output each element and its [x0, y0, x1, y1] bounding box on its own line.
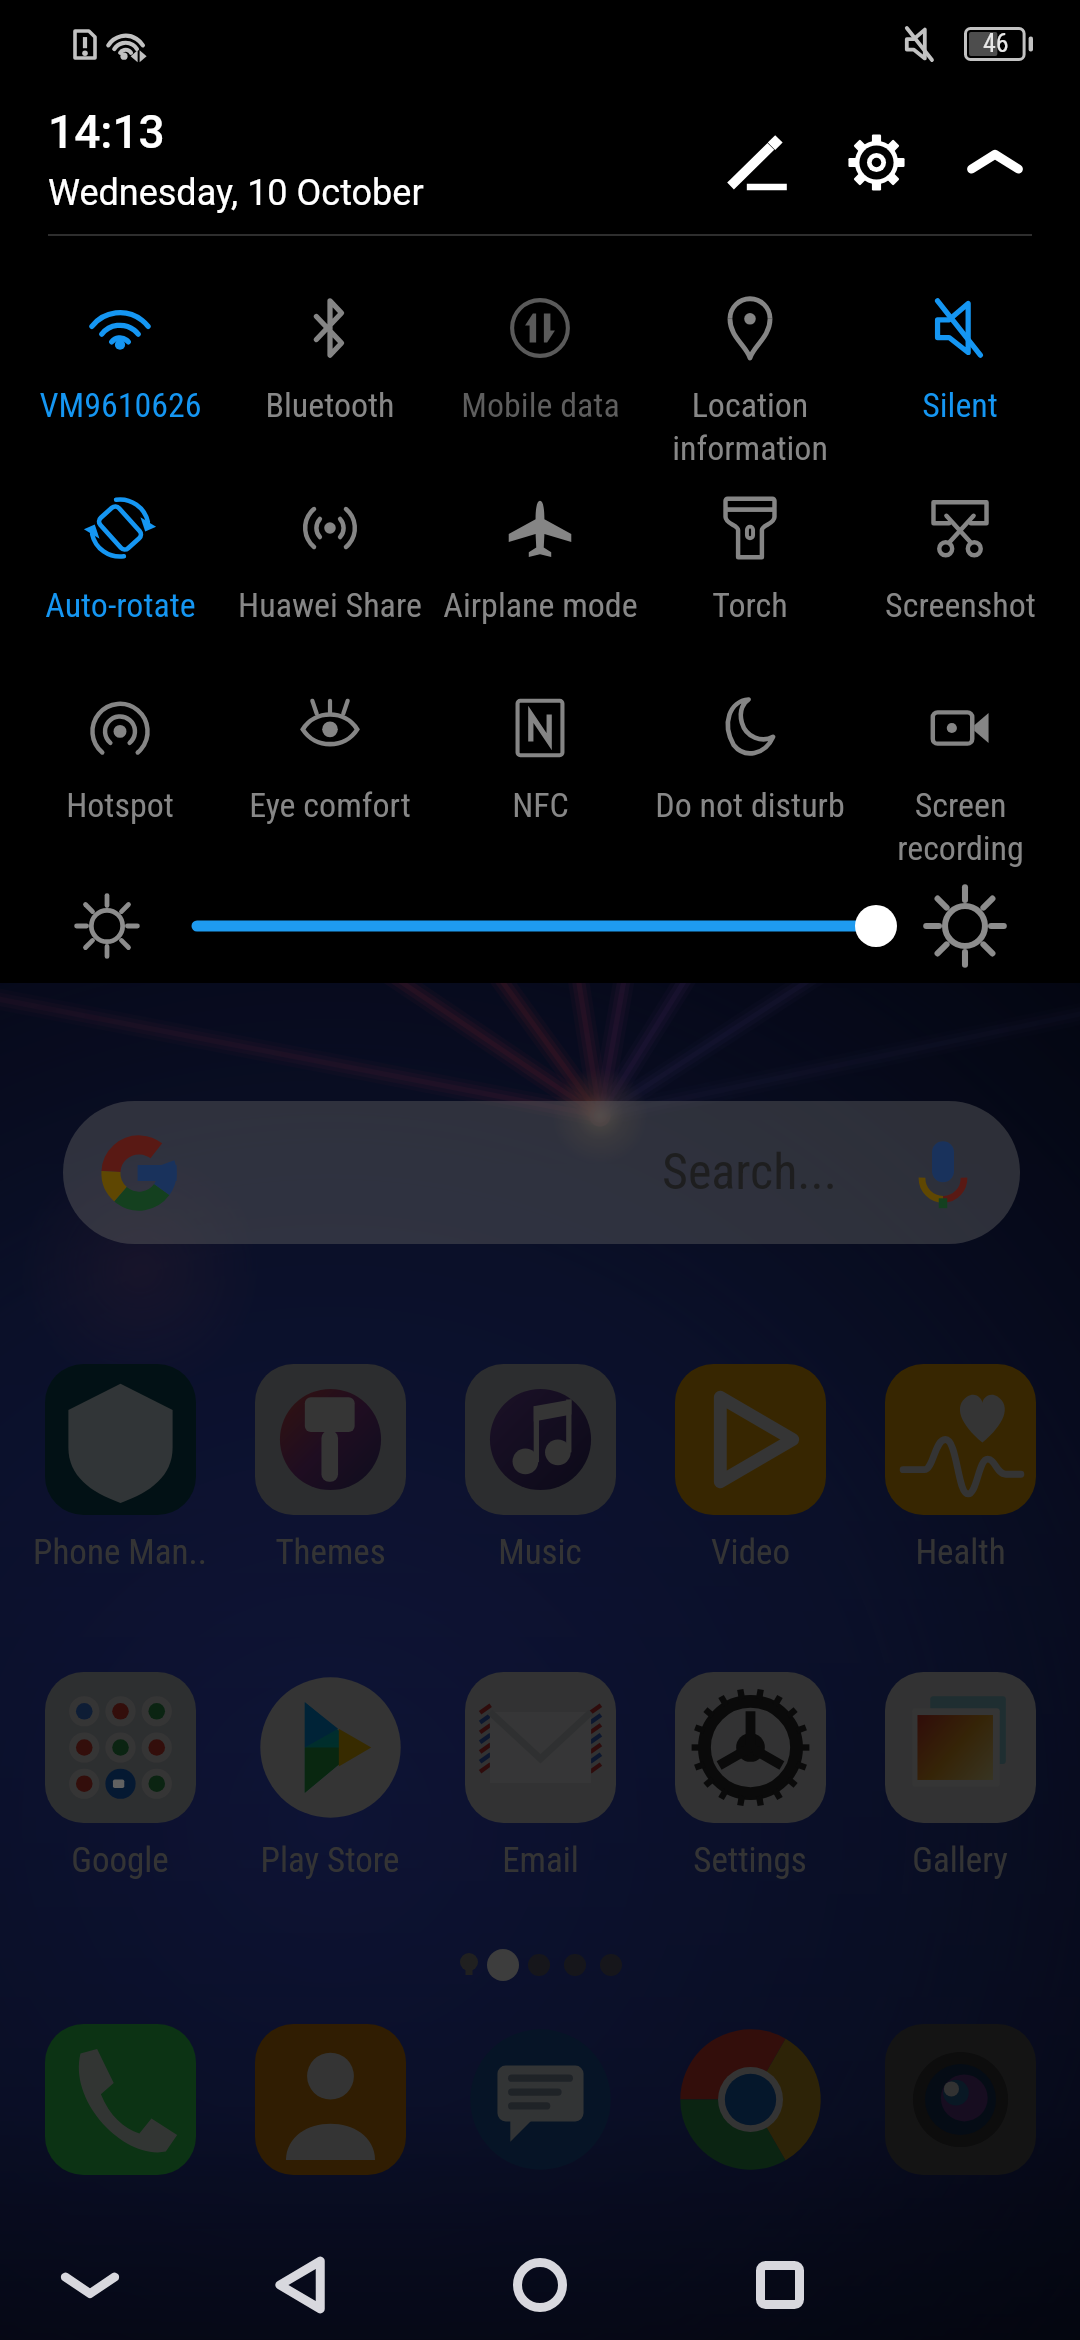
- staticText: Airplane mode: [443, 585, 638, 625]
- button[interactable]: Auto-rotate: [15, 445, 225, 625]
- staticText: Location information: [672, 385, 828, 468]
- staticText: Eye comfort: [249, 785, 411, 825]
- staticText: Screenshot: [885, 585, 1036, 625]
- staticText: Search...: [662, 1143, 837, 1202]
- staticText: Wednesday, 10 October: [48, 172, 424, 214]
- button[interactable]: Eye comfort: [225, 645, 435, 825]
- button[interactable]: Themes: [225, 1364, 435, 1573]
- staticText: Silent: [922, 385, 998, 425]
- button[interactable]: Camera: [885, 2024, 1036, 2175]
- staticText: Auto-rotate: [45, 585, 196, 625]
- staticText: Settings: [693, 1840, 807, 1881]
- button[interactable]: Location information: [645, 245, 855, 468]
- button[interactable]: Hotspot: [15, 645, 225, 825]
- button[interactable]: Brightness: [192, 896, 896, 956]
- button[interactable]: Edit: [705, 109, 815, 219]
- button[interactable]: Search: [63, 1101, 1020, 1244]
- staticText: Themes: [275, 1532, 386, 1573]
- staticText: 46: [983, 28, 1009, 58]
- button[interactable]: Messages: [465, 2024, 616, 2175]
- button[interactable]: Contacts: [255, 2024, 406, 2175]
- button[interactable]: Bluetooth: [225, 245, 435, 425]
- button[interactable]: Google: [15, 1672, 225, 1881]
- button[interactable]: Video: [645, 1364, 855, 1573]
- staticText: VM9610626: [39, 385, 202, 425]
- button[interactable]: Home: [495, 2240, 585, 2330]
- staticText: Do not disturb: [655, 785, 845, 825]
- staticText: Play Store: [260, 1840, 400, 1881]
- button[interactable]: Settings: [821, 107, 931, 217]
- button[interactable]: NFC: [435, 645, 645, 825]
- staticText: Google: [71, 1840, 169, 1881]
- button[interactable]: Phone Man..: [15, 1364, 225, 1573]
- button[interactable]: Screen recording: [855, 645, 1065, 868]
- staticText: Music: [498, 1532, 582, 1573]
- button[interactable]: Music: [435, 1364, 645, 1573]
- button[interactable]: Do not disturb: [645, 645, 855, 825]
- button[interactable]: Gallery: [855, 1672, 1065, 1881]
- staticText: Mobile data: [461, 385, 620, 425]
- button[interactable]: Airplane mode: [435, 445, 645, 625]
- button[interactable]: Phone: [45, 2024, 196, 2175]
- button[interactable]: VM9610626: [15, 245, 225, 425]
- button[interactable]: Recent apps: [735, 2240, 825, 2330]
- staticText: Torch: [712, 585, 788, 625]
- staticText: Video: [711, 1532, 790, 1573]
- staticText: Email: [502, 1840, 579, 1881]
- staticText: Screen recording: [897, 785, 1024, 868]
- button[interactable]: Chrome: [675, 2024, 826, 2175]
- staticText: Health: [915, 1532, 1006, 1573]
- button[interactable]: Email: [435, 1672, 645, 1881]
- staticText: Phone Man..: [33, 1532, 207, 1573]
- button[interactable]: Torch: [645, 445, 855, 625]
- button[interactable]: Collapse: [940, 107, 1050, 217]
- button[interactable]: Mobile data: [435, 245, 645, 425]
- staticText: NFC: [512, 785, 569, 825]
- staticText: Huawei Share: [238, 585, 422, 625]
- button[interactable]: Back: [255, 2240, 345, 2330]
- button[interactable]: Huawei Share: [225, 445, 435, 625]
- staticText: 14:13: [48, 105, 165, 159]
- button[interactable]: Hide panel: [45, 2240, 135, 2330]
- staticText: Bluetooth: [265, 385, 395, 425]
- button[interactable]: Health: [855, 1364, 1065, 1573]
- button[interactable]: Screenshot: [855, 445, 1065, 625]
- staticText: Gallery: [912, 1840, 1008, 1881]
- button[interactable]: Play Store: [225, 1672, 435, 1881]
- staticText: Hotspot: [66, 785, 174, 825]
- button[interactable]: Settings: [645, 1672, 855, 1881]
- button[interactable]: Silent: [855, 245, 1065, 425]
